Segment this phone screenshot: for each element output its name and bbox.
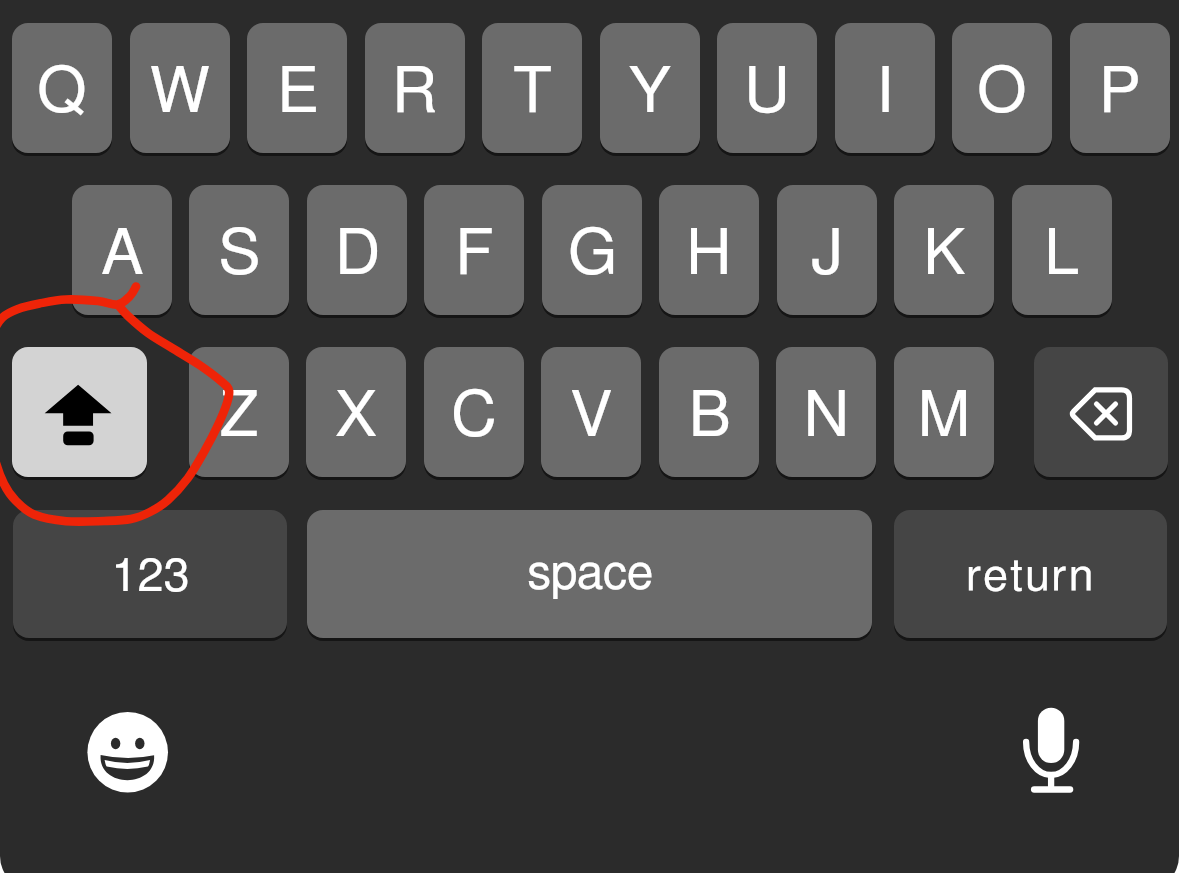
button[interactable]: U <box>717 23 817 153</box>
button[interactable]: M <box>894 347 994 477</box>
staticText: Y <box>628 61 672 124</box>
button[interactable]: I <box>835 23 935 153</box>
staticText: C <box>451 385 497 448</box>
button[interactable]: P <box>1070 23 1170 153</box>
button[interactable]: X <box>306 347 406 477</box>
button[interactable]: Emoji keyboard <box>84 708 172 796</box>
button[interactable]: F <box>424 185 524 315</box>
button[interactable]: Backspace <box>1034 347 1168 477</box>
button[interactable]: V <box>541 347 641 477</box>
staticText: F <box>455 223 494 286</box>
button[interactable]: H <box>659 185 759 315</box>
staticText: K <box>923 223 966 286</box>
staticText: U <box>744 61 790 124</box>
staticText: N <box>803 385 850 448</box>
staticText: O <box>977 61 1027 124</box>
button[interactable]: E <box>247 23 347 153</box>
staticText: space <box>527 550 653 598</box>
staticText: J <box>810 223 844 286</box>
staticText: B <box>688 385 731 448</box>
staticText: 123 <box>111 553 190 600</box>
staticText: T <box>512 61 553 124</box>
staticText: X <box>335 385 377 448</box>
staticText: A <box>101 223 144 286</box>
button[interactable]: R <box>365 23 465 153</box>
button[interactable]: A <box>72 185 172 315</box>
button[interactable]: G <box>542 185 642 315</box>
button[interactable]: S <box>189 185 289 315</box>
staticText: R <box>392 61 438 124</box>
button[interactable]: W <box>130 23 230 153</box>
staticText: Z <box>219 385 259 448</box>
button[interactable]: N <box>776 347 876 477</box>
staticText: V <box>571 385 612 448</box>
staticText: L <box>1044 223 1080 286</box>
staticText: H <box>686 223 732 286</box>
button[interactable]: 123 <box>13 510 287 638</box>
staticText: Q <box>37 61 87 124</box>
staticText: I <box>876 61 894 124</box>
button[interactable]: space <box>307 510 872 638</box>
staticText: S <box>218 223 261 286</box>
button[interactable]: T <box>482 23 582 153</box>
button[interactable]: K <box>894 185 994 315</box>
staticText: W <box>150 61 210 124</box>
button[interactable]: Z <box>189 347 289 477</box>
button[interactable]: D <box>307 185 407 315</box>
staticText: return <box>966 554 1096 599</box>
staticText: P <box>1099 61 1141 124</box>
button[interactable]: Voice dictation <box>1015 700 1090 800</box>
button[interactable]: L <box>1012 185 1112 315</box>
staticText: M <box>917 385 971 448</box>
button[interactable]: J <box>777 185 877 315</box>
staticText: G <box>568 223 617 286</box>
button[interactable]: B <box>659 347 759 477</box>
staticText: E <box>277 61 318 124</box>
staticText: D <box>335 223 380 286</box>
button[interactable]: C <box>424 347 524 477</box>
button[interactable]: Q <box>12 23 112 153</box>
button[interactable]: return <box>894 510 1167 638</box>
button[interactable]: Y <box>600 23 700 153</box>
button[interactable]: Shift <box>12 347 147 477</box>
button[interactable]: O <box>952 23 1052 153</box>
